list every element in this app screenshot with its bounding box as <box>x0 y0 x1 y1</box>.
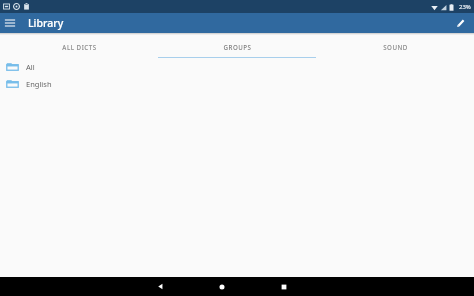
button[interactable]: Recent apps <box>265 277 303 296</box>
staticText: ALL DICTS <box>62 43 97 51</box>
button[interactable]: Back <box>141 277 179 296</box>
staticText: GROUPS <box>223 43 252 51</box>
staticText: English <box>26 79 52 89</box>
button[interactable]: Open navigation drawer <box>0 13 20 33</box>
button[interactable]: GROUPS <box>158 35 316 58</box>
staticText: 23% <box>459 3 471 11</box>
button[interactable]: All <box>0 58 474 75</box>
staticText: Library <box>28 16 64 30</box>
button[interactable]: ALL DICTS <box>0 35 158 58</box>
button[interactable]: Home <box>203 277 241 296</box>
button[interactable]: Edit <box>451 13 471 33</box>
staticText: SOUND <box>383 43 408 51</box>
staticText: All <box>26 62 35 72</box>
button[interactable]: English <box>0 75 474 92</box>
button[interactable]: SOUND <box>316 35 474 58</box>
